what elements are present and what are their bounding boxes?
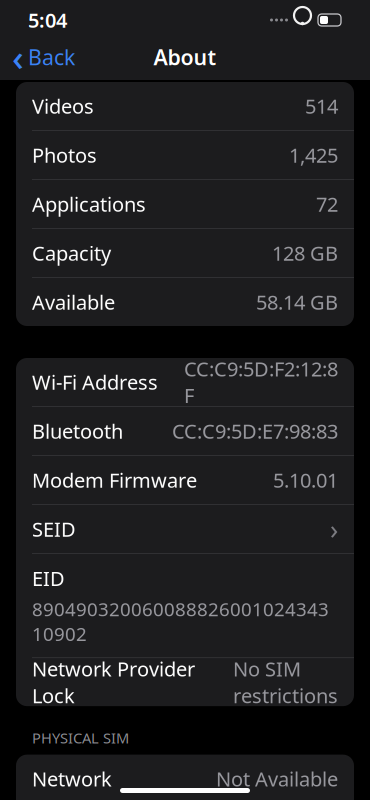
staticText: SEID [32, 516, 76, 542]
staticText: No SIM restrictions [233, 656, 338, 709]
button[interactable]: Wi-Fi Address [16, 358, 354, 406]
staticText: About [153, 43, 216, 71]
button[interactable]: EID [16, 554, 354, 657]
staticText: › [330, 511, 338, 547]
staticText: 1,425 [289, 142, 338, 168]
staticText: Not Available [216, 765, 338, 792]
staticText: CC:C9:5D:E7:98:83 [172, 418, 338, 444]
button[interactable]: ‹ [0, 40, 87, 74]
button[interactable]: Network [16, 755, 354, 800]
button[interactable]: Bluetooth [16, 407, 354, 455]
staticText: 5.10.01 [273, 467, 338, 493]
button[interactable]: Videos [16, 82, 354, 130]
staticText: Videos [32, 93, 94, 119]
button[interactable]: Capacity [16, 229, 354, 277]
staticText: PHYSICAL SIM [32, 728, 129, 748]
staticText: 89049032006008882600102434310902 [32, 597, 329, 646]
staticText: Modem Firmware [32, 467, 197, 493]
staticText: Applications [32, 191, 146, 217]
staticText: Back [28, 43, 75, 71]
staticText: 128 GB [272, 240, 338, 266]
staticText: Bluetooth [32, 418, 123, 444]
button[interactable]: Applications [16, 180, 354, 228]
button[interactable]: SEID [16, 505, 354, 553]
staticText: Network [32, 765, 112, 792]
staticText: 72 [316, 191, 338, 217]
button[interactable]: Available [16, 278, 354, 326]
staticText: 514 [305, 93, 338, 119]
staticText: Network Provider Lock [32, 656, 195, 709]
staticText: Photos [32, 142, 97, 168]
button[interactable]: Photos [16, 131, 354, 179]
staticText: Wi-Fi Address [32, 369, 158, 395]
staticText: Available [32, 289, 115, 315]
staticText: EID [32, 565, 65, 592]
staticText: CC:C9:5D:F2:12:8F [184, 355, 338, 408]
staticText: ‹ [12, 33, 24, 81]
staticText: 58.14 GB [256, 289, 338, 315]
button[interactable]: Network Provider Lock [16, 658, 354, 706]
button[interactable]: Modem Firmware [16, 456, 354, 504]
staticText: Capacity [32, 240, 111, 266]
staticText: 5:04 [28, 7, 67, 33]
